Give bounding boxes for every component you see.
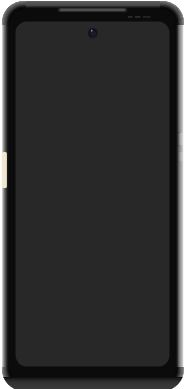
button[interactable] <box>0 0 185 389</box>
